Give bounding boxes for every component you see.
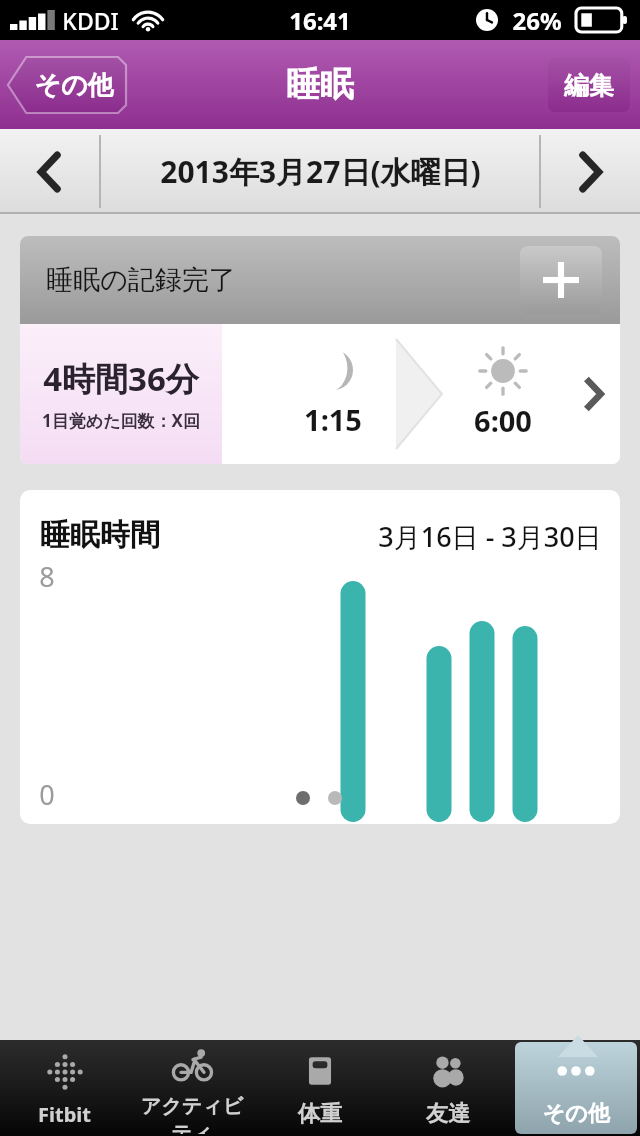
staticText: 友達 <box>426 1100 470 1128</box>
staticText: 8 <box>39 558 55 595</box>
staticText: 睡眠の記録完了 <box>46 263 236 297</box>
staticText: 6:00 <box>474 401 532 440</box>
staticText: KDDI <box>62 5 119 36</box>
button[interactable]: 編集 <box>548 58 630 112</box>
button[interactable]: Fitbit <box>3 1042 125 1134</box>
staticText: 睡眠 <box>286 63 354 106</box>
button[interactable]: 友達 <box>387 1042 509 1134</box>
staticText: 1:15 <box>304 400 362 439</box>
button[interactable]: 4時間36分 <box>20 324 620 464</box>
staticText: 0 <box>39 776 55 813</box>
button[interactable]: 睡眠時間 <box>20 490 620 824</box>
staticText: アクティビティ <box>131 1094 253 1134</box>
button[interactable]: Add sleep record <box>520 246 602 314</box>
button[interactable]: アクティビティ <box>131 1042 253 1134</box>
staticText: 26% <box>512 4 562 37</box>
staticText: 睡眠時間 <box>40 516 160 554</box>
staticText: 3月16日 - 3月30日 <box>378 518 602 555</box>
button[interactable]: その他 <box>8 57 126 113</box>
button[interactable]: Next day <box>540 129 640 214</box>
staticText: その他 <box>542 1100 610 1128</box>
button[interactable]: その他 <box>515 1042 637 1134</box>
staticText: 2013年3月27日(水曜日) <box>160 151 481 192</box>
button[interactable]: Previous day <box>0 129 100 214</box>
button[interactable]: 体重 <box>259 1042 381 1134</box>
staticText: その他 <box>34 69 114 102</box>
staticText: 4時間36分 <box>43 356 199 401</box>
staticText: 体重 <box>298 1100 342 1128</box>
staticText: 16:41 <box>289 4 351 37</box>
staticText: Fitbit <box>38 1101 91 1128</box>
staticText: 編集 <box>564 70 614 101</box>
staticText: 1目覚めた回数：X回 <box>42 409 200 432</box>
